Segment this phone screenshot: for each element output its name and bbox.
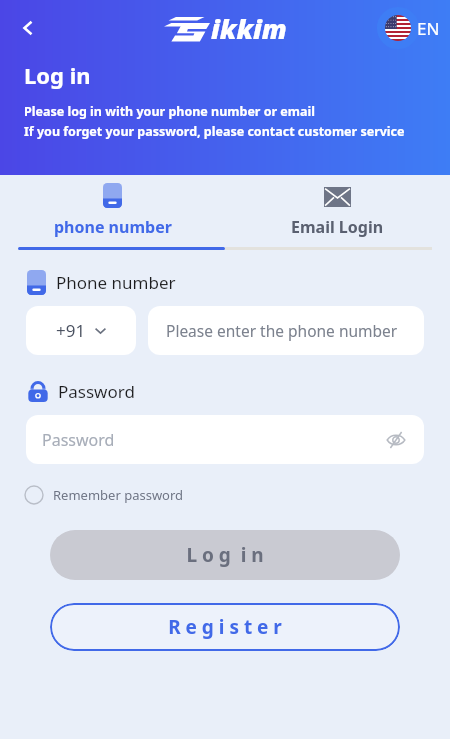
button[interactable]: Please enter the phone number: [148, 306, 424, 355]
staticText: R e g i s t e r: [168, 614, 282, 640]
button[interactable]: Email Login: [225, 183, 450, 247]
staticText: Password: [42, 429, 384, 451]
button[interactable]: L o g i n: [50, 530, 400, 580]
button[interactable]: Remember password: [24, 485, 184, 505]
button[interactable]: R e g i s t e r: [50, 603, 400, 651]
staticText: Password: [58, 380, 135, 403]
button[interactable]: Show password: [384, 428, 408, 452]
staticText: Please enter the phone number: [166, 320, 398, 341]
staticText: Please log in with your phone number or …: [24, 103, 315, 120]
staticText: L o g i n: [186, 542, 264, 568]
staticText: ikkim: [211, 10, 287, 47]
staticText: Remember password: [53, 486, 184, 504]
button[interactable]: Back: [6, 6, 50, 50]
staticText: Email Login: [291, 216, 384, 238]
staticText: Phone number: [56, 271, 176, 294]
button[interactable]: EN: [385, 15, 440, 41]
button[interactable]: +91: [26, 306, 136, 355]
staticText: +91: [56, 319, 86, 342]
button[interactable]: Password: [26, 415, 424, 464]
staticText: phone number: [54, 216, 172, 238]
staticText: If you forget your password, please cont…: [24, 123, 405, 140]
button[interactable]: phone number: [0, 183, 225, 247]
staticText: Log in: [24, 60, 91, 90]
staticText: EN: [417, 17, 440, 40]
